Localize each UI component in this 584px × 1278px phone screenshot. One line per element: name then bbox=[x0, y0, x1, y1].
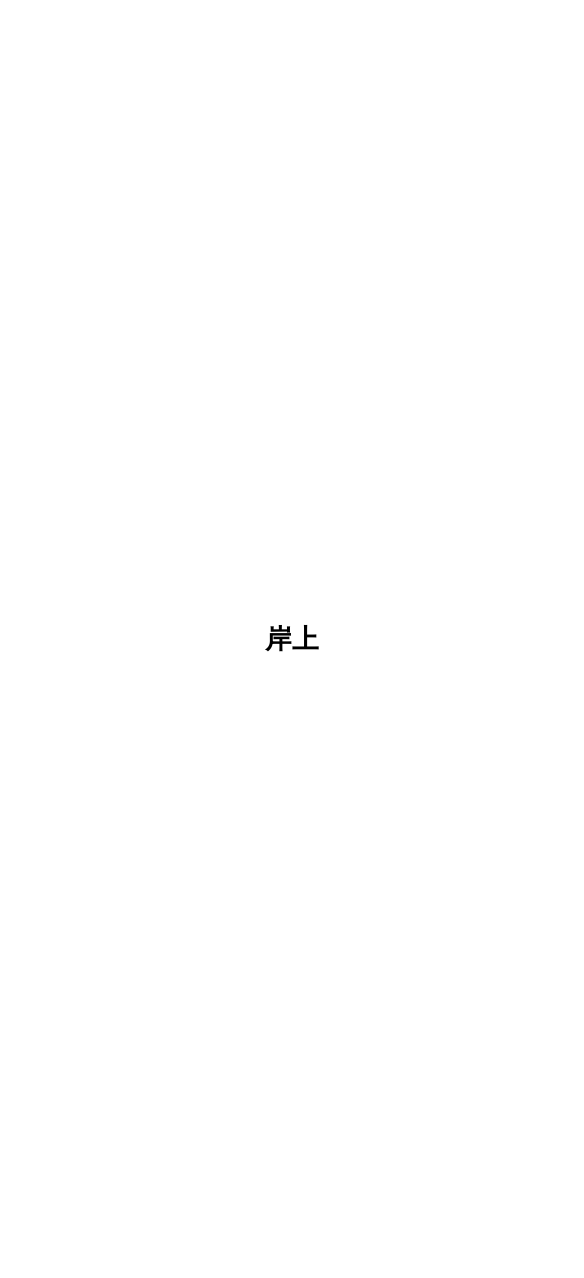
staticText: 岸上 bbox=[265, 623, 319, 655]
